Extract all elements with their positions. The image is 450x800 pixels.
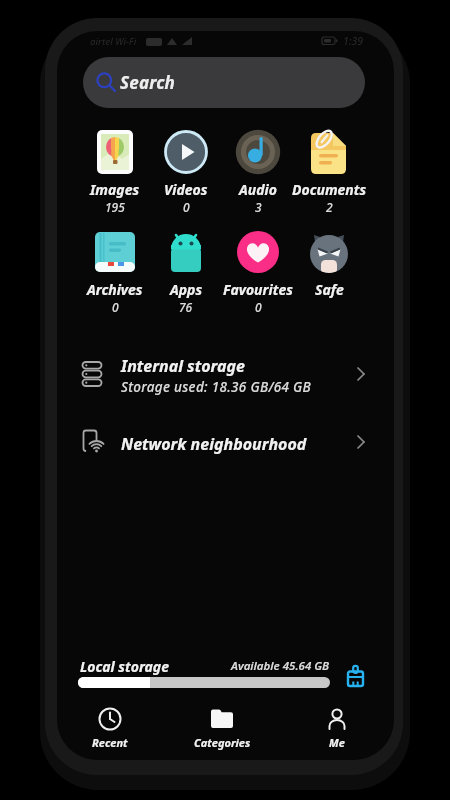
button[interactable]: Safe — [289, 229, 369, 299]
button[interactable]: Apps — [146, 229, 226, 315]
staticText: Favourites — [223, 280, 293, 299]
staticText: Network neighbourhood — [121, 433, 307, 455]
staticText: Audio — [239, 180, 277, 199]
button[interactable]: Favourites — [218, 229, 298, 315]
staticText: Me — [329, 735, 345, 750]
staticText: Images — [90, 180, 140, 199]
button[interactable]: Internal storage — [57, 352, 394, 402]
button[interactable]: Images — [75, 129, 155, 215]
staticText: Apps — [170, 280, 203, 299]
staticText: airtel Wi-Fi — [90, 35, 137, 48]
staticText: Archives — [87, 280, 143, 299]
staticText: Categories — [194, 735, 251, 750]
staticText: Search — [120, 71, 176, 94]
staticText: Local storage — [80, 657, 169, 676]
staticText: 195 — [105, 199, 125, 215]
staticText: Videos — [164, 180, 208, 199]
button[interactable]: Categories — [182, 705, 262, 750]
button[interactable] — [343, 661, 369, 689]
staticText: Recent — [92, 735, 128, 750]
button[interactable]: Videos — [146, 129, 226, 215]
staticText: 76 — [179, 299, 193, 315]
staticText: 0 — [112, 299, 119, 315]
staticText: 3 — [255, 199, 262, 215]
staticText: 0 — [255, 299, 262, 315]
button[interactable]: Documents — [289, 129, 369, 215]
staticText: 2 — [326, 199, 333, 215]
button[interactable]: Recent — [70, 705, 150, 750]
staticText: Safe — [315, 280, 344, 299]
staticText: Available 45.64 GB — [231, 658, 330, 674]
button[interactable]: Search — [83, 57, 365, 108]
staticText: 1:39 — [343, 34, 364, 48]
staticText: Internal storage — [121, 355, 245, 377]
staticText: Storage used: 18.36 GB/64 GB — [121, 378, 312, 396]
button[interactable]: Audio — [218, 129, 298, 215]
staticText: 0 — [183, 199, 190, 215]
button[interactable]: Network neighbourhood — [57, 424, 394, 468]
button[interactable]: Me — [297, 705, 377, 750]
button[interactable]: Archives — [75, 229, 155, 315]
staticText: Documents — [292, 180, 367, 199]
